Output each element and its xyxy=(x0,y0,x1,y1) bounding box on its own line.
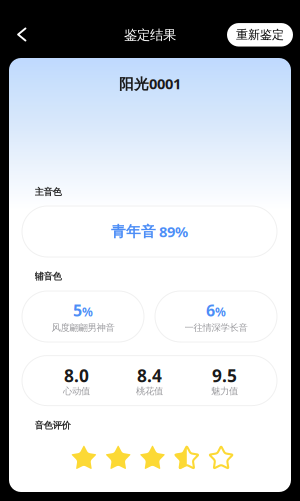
staticText: 青年音 xyxy=(111,222,156,240)
staticText: 阳光0001 xyxy=(119,74,181,93)
staticText: 重新鉴定 xyxy=(236,27,284,42)
staticText: 主音色 xyxy=(34,186,61,198)
staticText: 89% xyxy=(159,222,188,241)
staticText: 心动值 xyxy=(63,385,90,397)
staticText: % xyxy=(215,304,226,320)
staticText: 魅力值 xyxy=(211,385,238,397)
staticText: 一往情深学长音 xyxy=(184,322,247,333)
staticText: 9.5 xyxy=(212,364,237,387)
staticText: 辅音色 xyxy=(34,271,61,282)
button[interactable]: 返回 xyxy=(5,15,39,53)
staticText: 8.4 xyxy=(137,364,162,387)
staticText: 8.0 xyxy=(64,364,89,387)
staticText: 6 xyxy=(206,300,215,321)
staticText: % xyxy=(82,304,93,320)
staticText: 音色评价 xyxy=(34,420,70,431)
staticText: 风度翩翩男神音 xyxy=(51,322,114,333)
staticText: 鉴定结果 xyxy=(124,27,176,43)
button[interactable]: 重新鉴定 xyxy=(227,23,293,46)
staticText: 5 xyxy=(73,300,82,321)
staticText: 桃花值 xyxy=(136,385,163,397)
